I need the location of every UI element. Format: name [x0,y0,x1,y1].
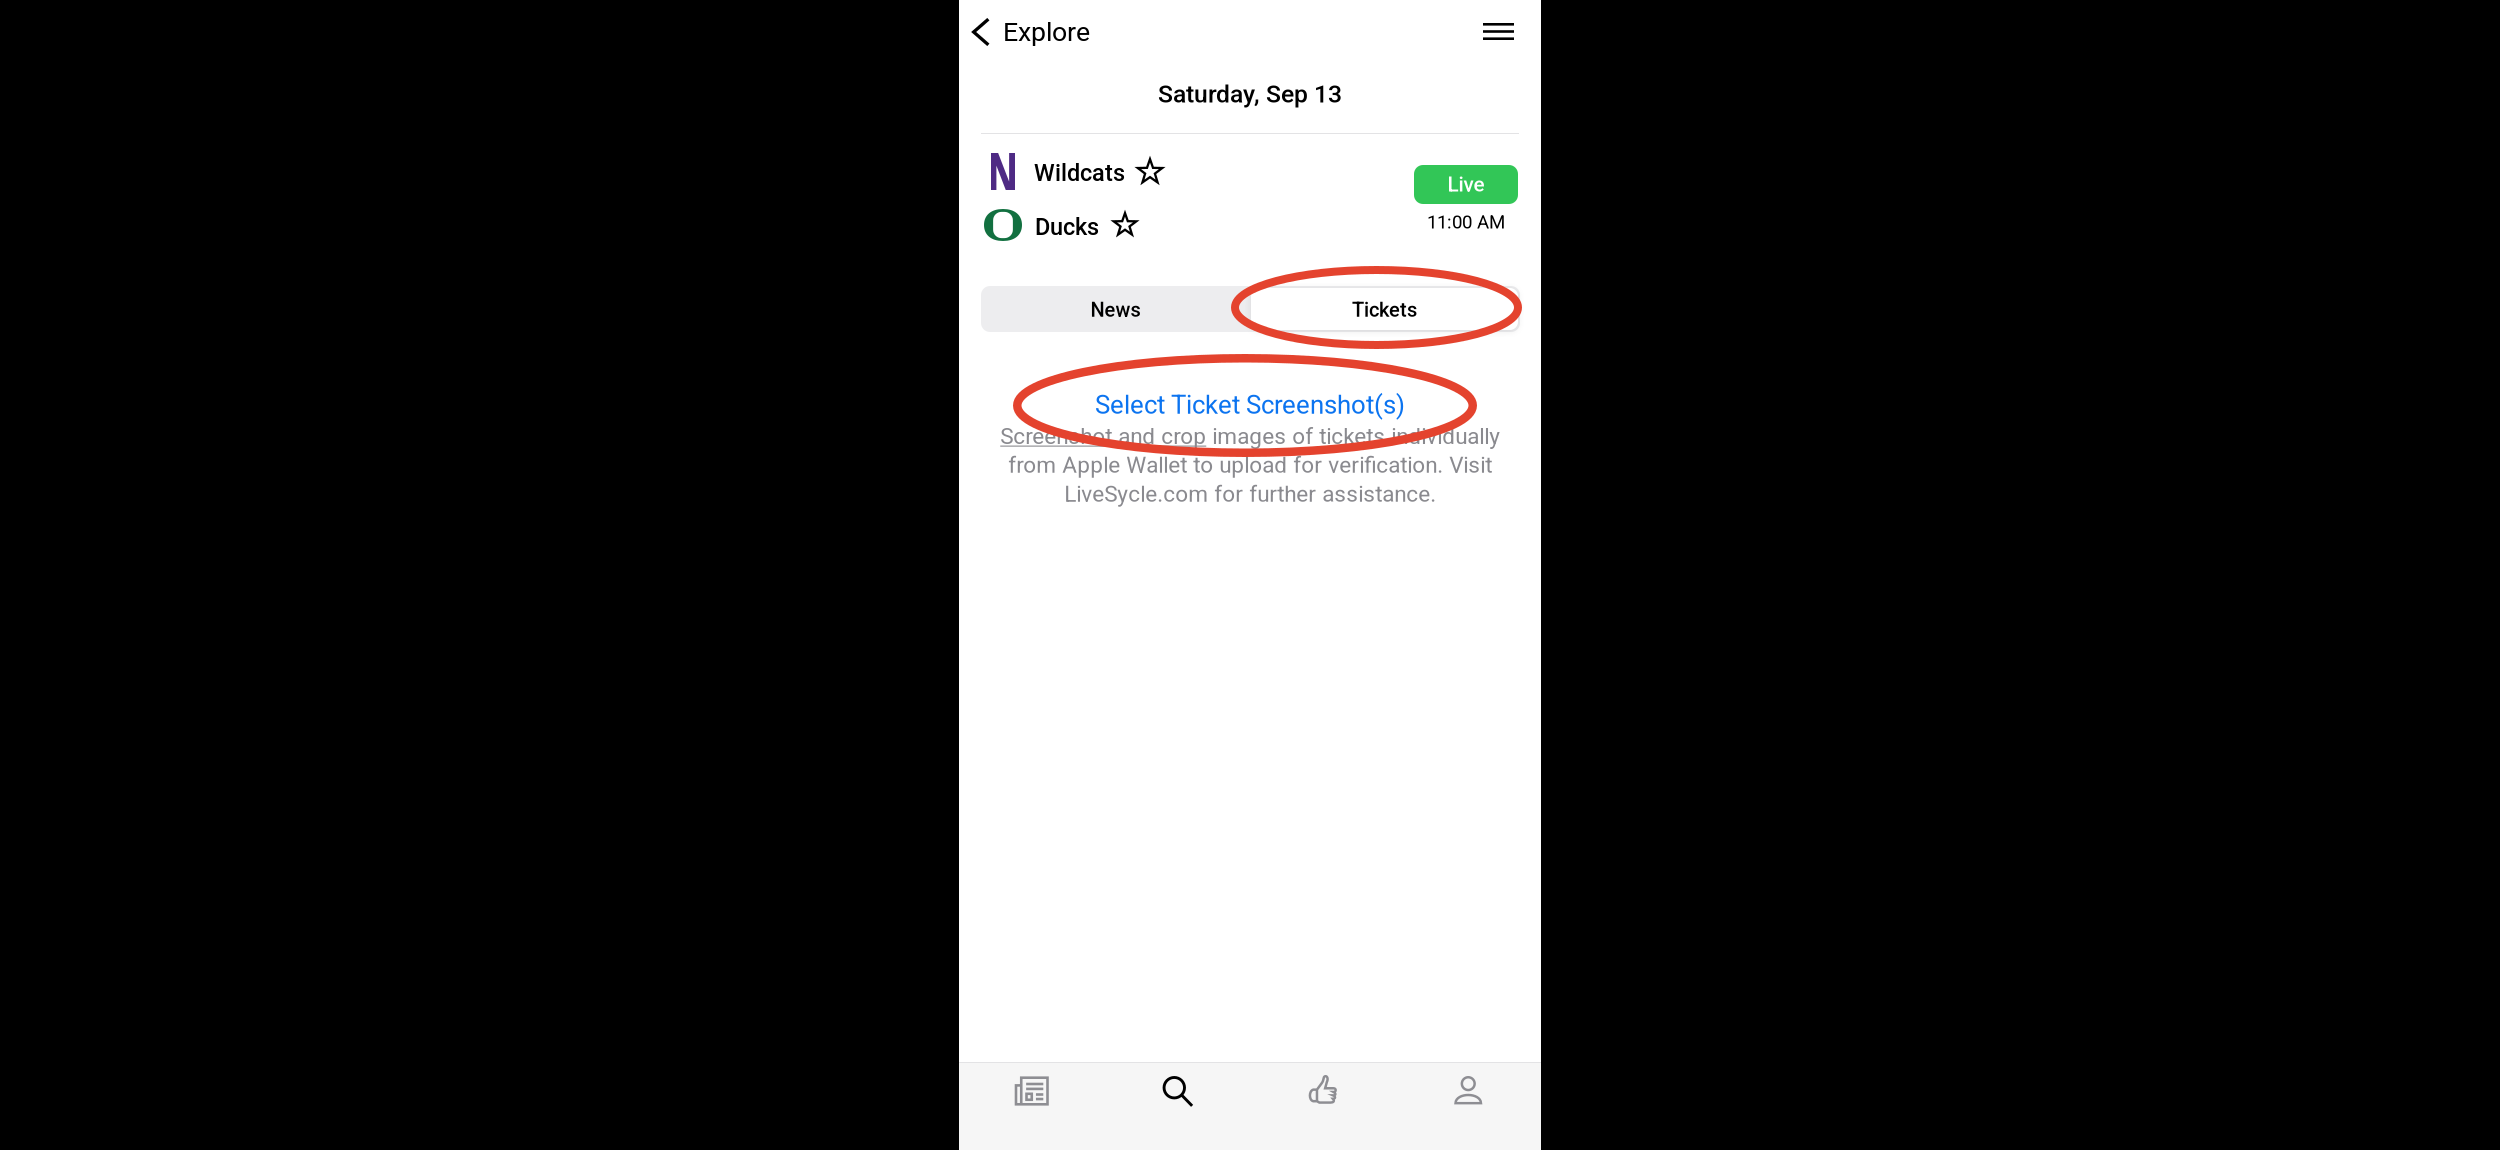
staticText: Explore [1003,16,1090,48]
staticText: News [1090,298,1140,322]
button[interactable]: Tickets [1251,286,1519,332]
button[interactable]: Favorite Ducks [1106,206,1144,244]
button[interactable]: Menu [1471,11,1526,52]
staticText: Select Ticket Screenshot(s) [1095,390,1405,420]
button[interactable]: Live [1414,165,1518,204]
button[interactable]: Favorite Wildcats [1130,152,1170,192]
button[interactable]: Select Ticket Screenshot(s) [959,390,1541,420]
staticText: Ducks [1035,213,1099,241]
staticText: Screenshot and crop images of tickets in… [1000,423,1500,507]
button[interactable]: Likes [1250,1063,1395,1119]
staticText: Saturday, Sep 13 [1158,79,1342,108]
button[interactable]: News [981,286,1250,332]
staticText: Wildcats [1034,159,1125,187]
staticText: Live [1447,172,1484,197]
button[interactable]: News [959,1063,1104,1119]
staticText: Tickets [1352,298,1417,322]
button[interactable]: Explore [959,8,1109,56]
button[interactable]: Search [1104,1063,1250,1119]
staticText: 11:00 AM [1427,211,1505,233]
button[interactable]: Profile [1395,1063,1541,1119]
